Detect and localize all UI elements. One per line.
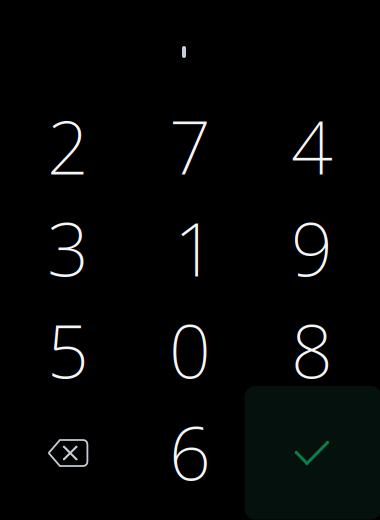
staticText: 5 [47,301,89,399]
button[interactable]: 7 [129,95,251,197]
staticText: 1 [174,199,216,297]
button[interactable]: 8 [251,299,373,401]
button[interactable]: 5 [7,299,129,401]
staticText: 2 [47,97,89,195]
staticText: 0 [169,301,211,399]
button[interactable]: 4 [251,95,373,197]
button[interactable]: 0 [129,299,251,401]
button[interactable]: 1 [129,197,251,299]
staticText: 7 [169,97,211,195]
button[interactable]: 9 [251,197,373,299]
staticText: 8 [291,301,333,399]
staticText: 6 [169,403,211,501]
staticText: 4 [291,97,333,195]
button[interactable]: Delete [7,401,129,503]
staticText: 9 [291,199,333,297]
button[interactable]: 2 [7,95,129,197]
button[interactable]: 6 [129,401,251,503]
staticText: 3 [47,199,89,297]
button[interactable]: Confirm [251,401,373,503]
button[interactable]: 3 [7,197,129,299]
